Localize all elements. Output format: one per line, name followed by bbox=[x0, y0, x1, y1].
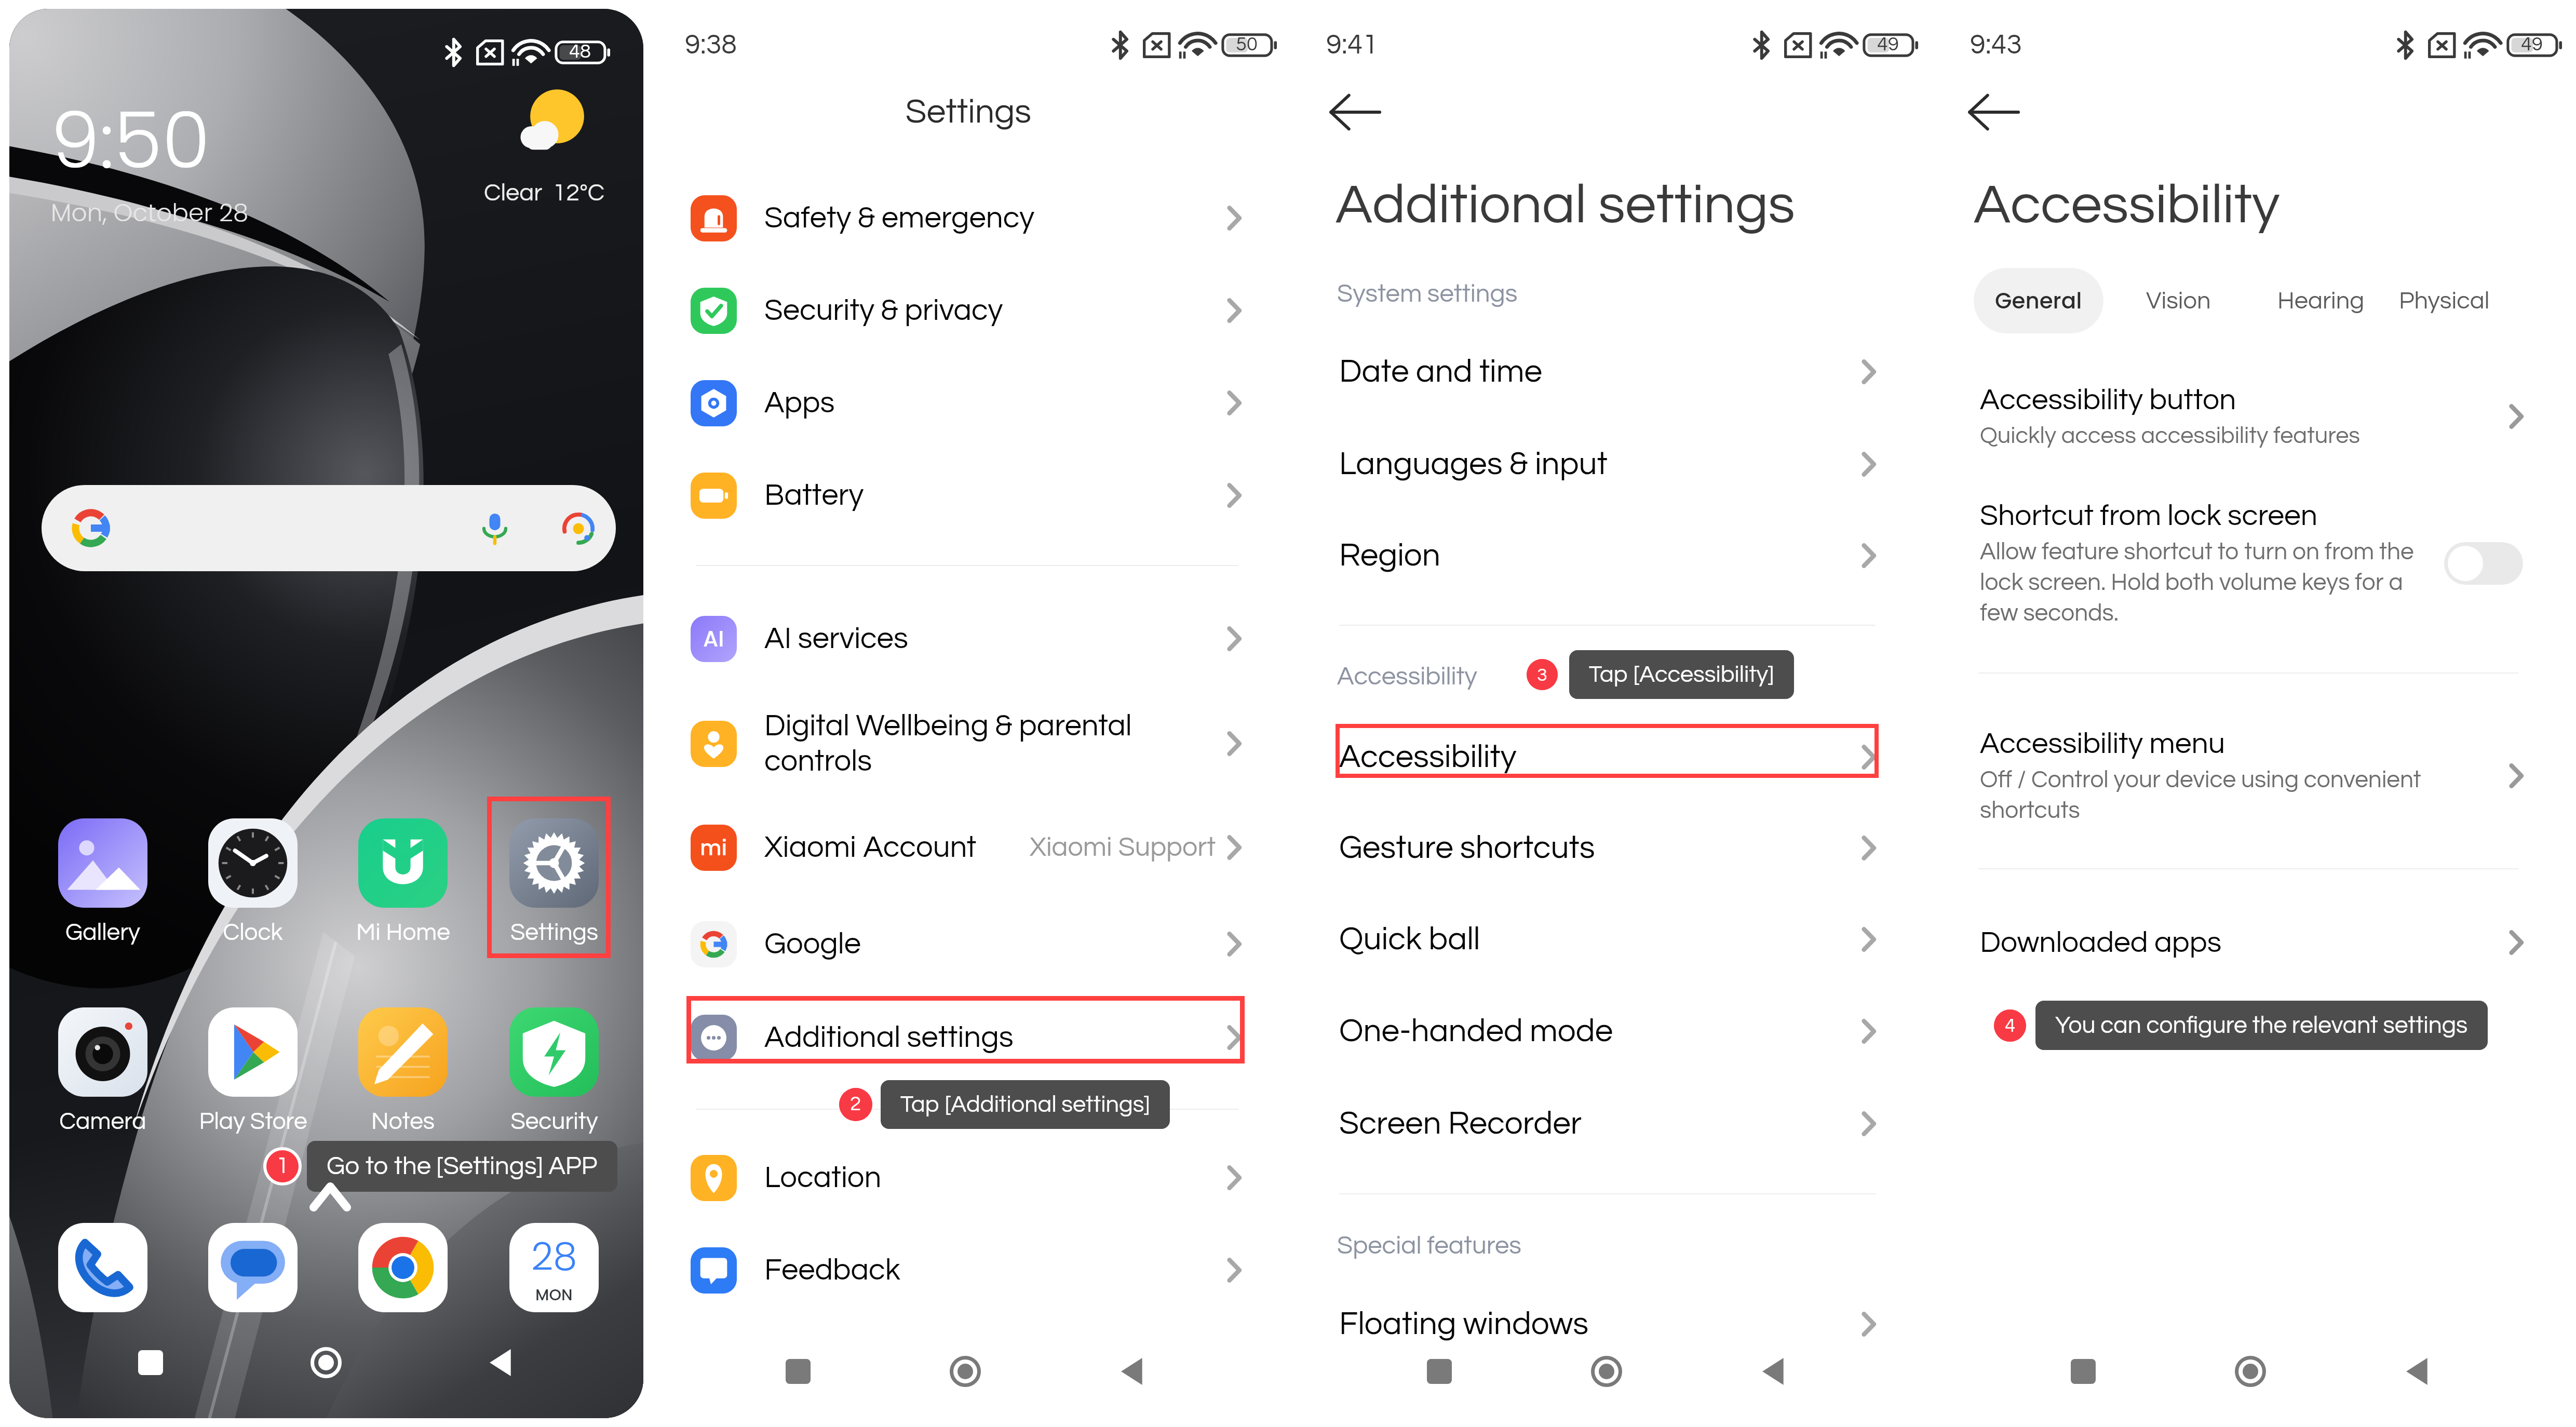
button[interactable]: Clock bbox=[178, 818, 328, 908]
staticText: Gallery bbox=[65, 920, 140, 945]
staticText: 49 bbox=[2521, 34, 2543, 55]
staticText: 50 bbox=[1236, 34, 1258, 55]
staticText: 48 bbox=[569, 42, 591, 62]
staticText: Google bbox=[764, 928, 861, 960]
button[interactable]: Back bbox=[1326, 83, 1384, 141]
staticText: Gesture shortcuts bbox=[1339, 831, 1595, 865]
staticText: 1 bbox=[276, 1154, 289, 1178]
button[interactable]: One-handed mode bbox=[1339, 1002, 1876, 1061]
button[interactable]: Downloaded apps bbox=[1980, 917, 2523, 968]
staticText: Accessibility button bbox=[1980, 385, 2236, 415]
button[interactable]: Home bbox=[932, 1343, 999, 1400]
button[interactable]: Back bbox=[2384, 1343, 2452, 1400]
staticText: Screen Recorder bbox=[1339, 1107, 1582, 1140]
staticText: Security & privacy bbox=[764, 295, 1003, 326]
staticText: Accessibility bbox=[1974, 177, 2280, 234]
button[interactable]: Recent apps bbox=[764, 1343, 832, 1400]
button[interactable]: Back bbox=[468, 1334, 535, 1391]
staticText: Special features bbox=[1337, 1233, 1521, 1259]
staticText: Off / Control your device using convenie… bbox=[1980, 768, 2442, 823]
staticText: Play Store bbox=[199, 1109, 307, 1134]
staticText: Settings bbox=[510, 920, 598, 945]
staticText: Vision bbox=[2146, 288, 2211, 313]
staticText: 28 bbox=[531, 1229, 577, 1283]
staticText: Region bbox=[1339, 539, 1440, 572]
button[interactable]: Recent apps bbox=[2049, 1343, 2117, 1400]
button[interactable]: Languages & input bbox=[1339, 435, 1876, 494]
staticText: Floating windows bbox=[1339, 1308, 1589, 1341]
button[interactable]: Settings bbox=[479, 818, 629, 908]
staticText: mi bbox=[700, 833, 727, 863]
button[interactable]: Home bbox=[292, 1334, 360, 1391]
button[interactable]: Accessibility bbox=[1339, 728, 1876, 787]
button[interactable]: Google bbox=[691, 910, 1241, 978]
button[interactable]: Accessibility button bbox=[1980, 385, 2523, 448]
button[interactable]: Battery bbox=[691, 462, 1241, 529]
button[interactable]: Camera bbox=[28, 1007, 178, 1097]
button[interactable]: Calendar bbox=[509, 1223, 599, 1312]
button[interactable]: mi bbox=[691, 814, 1241, 881]
staticText: Security bbox=[510, 1109, 598, 1134]
button[interactable]: Apps bbox=[691, 369, 1241, 437]
staticText: AI bbox=[703, 624, 724, 654]
staticText: 49 bbox=[1877, 34, 1899, 55]
button[interactable]: Home bbox=[2217, 1343, 2284, 1400]
staticText: 9:38 bbox=[685, 31, 737, 60]
button[interactable]: Gesture shortcuts bbox=[1339, 818, 1876, 878]
button[interactable]: Quick ball bbox=[1339, 910, 1876, 969]
staticText: Mi Home bbox=[356, 920, 450, 945]
staticText: Battery bbox=[764, 480, 864, 511]
button[interactable]: Mi Home bbox=[328, 818, 478, 908]
staticText: Languages & input bbox=[1339, 448, 1608, 481]
button[interactable]: Shortcut from lock screen bbox=[1980, 501, 2523, 626]
button[interactable]: Vision bbox=[2121, 268, 2235, 333]
staticText: AI services bbox=[764, 623, 908, 654]
button[interactable]: Back bbox=[1964, 83, 2022, 141]
button[interactable]: Home bbox=[1573, 1343, 1640, 1400]
staticText: 9:41 bbox=[1326, 31, 1379, 60]
button[interactable]: Hearing bbox=[2264, 268, 2378, 333]
staticText: Accessibility menu bbox=[1980, 729, 2225, 759]
staticText: Settings bbox=[667, 95, 1270, 130]
staticText: Physical bbox=[2399, 288, 2490, 313]
button[interactable]: Location bbox=[691, 1144, 1241, 1211]
staticText: Digital Wellbeing & parental bbox=[764, 710, 1132, 742]
button[interactable]: Chrome bbox=[358, 1223, 448, 1312]
staticText: Camera bbox=[59, 1109, 146, 1134]
staticText: Tap [Additional settings] bbox=[900, 1093, 1150, 1116]
staticText: Clear 12°C bbox=[484, 180, 605, 205]
button[interactable]: Safety & emergency bbox=[691, 184, 1241, 252]
button[interactable]: Digital Wellbeing & parental bbox=[691, 692, 1241, 796]
button[interactable]: Accessibility menu bbox=[1980, 729, 2523, 823]
button[interactable]: General bbox=[1974, 268, 2103, 333]
button[interactable]: Floating windows bbox=[1339, 1295, 1876, 1354]
button[interactable]: AI bbox=[691, 605, 1241, 672]
button[interactable]: Security & privacy bbox=[691, 277, 1241, 344]
button[interactable]: Recent apps bbox=[117, 1334, 184, 1391]
staticText: System settings bbox=[1337, 281, 1518, 307]
button[interactable]: Messages bbox=[208, 1223, 298, 1312]
button[interactable]: Screen Recorder bbox=[1339, 1094, 1876, 1153]
button[interactable]: Back bbox=[1741, 1343, 1808, 1400]
button[interactable]: Play Store bbox=[178, 1007, 328, 1097]
button[interactable]: Security bbox=[479, 1007, 629, 1097]
button[interactable]: Date and time bbox=[1339, 342, 1876, 401]
button[interactable]: Feedback bbox=[691, 1236, 1241, 1304]
staticText: General bbox=[1995, 286, 2082, 316]
staticText: Quickly access accessibility features bbox=[1980, 424, 2360, 448]
button[interactable]: Gallery bbox=[28, 818, 178, 908]
staticText: Go to the [Settings] APP bbox=[327, 1153, 598, 1179]
button[interactable]: Recent apps bbox=[1406, 1343, 1473, 1400]
button[interactable]: Notes bbox=[328, 1007, 478, 1097]
button[interactable]: Physical bbox=[2387, 268, 2501, 333]
button[interactable]: Back bbox=[1099, 1343, 1167, 1400]
button[interactable]: Region bbox=[1339, 526, 1876, 585]
staticText: Allow feature shortcut to turn on from t… bbox=[1980, 540, 2437, 626]
staticText: Clock bbox=[223, 920, 283, 945]
staticText: Date and time bbox=[1339, 355, 1543, 388]
button[interactable] bbox=[42, 485, 616, 571]
staticText: One-handed mode bbox=[1339, 1015, 1613, 1048]
button[interactable]: Additional settings bbox=[691, 1004, 1241, 1071]
button[interactable]: Phone bbox=[58, 1223, 147, 1312]
staticText: Hearing bbox=[2277, 288, 2365, 313]
